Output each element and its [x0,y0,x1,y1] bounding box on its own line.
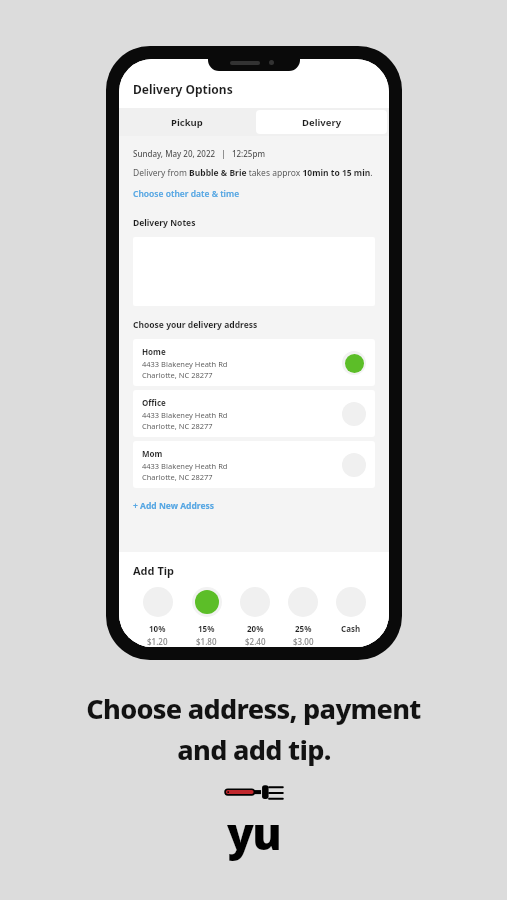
staticText: Mom [142,448,163,459]
staticText: 25% [295,623,312,634]
button[interactable]: Select Mom address [342,453,366,477]
staticText: $3.00 [293,636,314,647]
button[interactable]: + Add New Address [133,500,215,512]
button[interactable]: 25% [279,587,327,647]
button[interactable]: Cash [327,587,375,634]
button[interactable]: 10% [133,587,182,647]
staticText: Cash [341,623,361,634]
staticText: $1.80 [196,636,217,647]
button[interactable]: Home [133,339,375,386]
staticText: Pickup [171,116,203,129]
staticText: 4433 Blakeney Heath Rd [142,359,228,369]
staticText: + Add New Address [133,500,215,512]
button[interactable]: Delivery [256,110,387,134]
button[interactable]: Choose other date & time [133,188,240,200]
button[interactable]: 20% [231,587,279,647]
staticText: and add tip. [177,731,331,768]
staticText: Add Tip [133,563,174,578]
staticText: Delivery from Bubble & Brie takes approx… [133,167,373,179]
staticText: 4433 Blakeney Heath Rd [142,410,228,420]
staticText: Charlotte, NC 28277 [142,370,213,380]
staticText: 15% [198,623,215,634]
staticText: Delivery Options [133,81,233,97]
button[interactable]: Office [133,390,375,437]
staticText: yu [227,803,281,863]
button[interactable]: 15% [182,587,231,647]
staticText: Choose your delivery address [133,319,258,331]
staticText: Charlotte, NC 28277 [142,472,213,482]
button[interactable]: Mom [133,441,375,488]
staticText: 10% [149,623,166,634]
staticText: Sunday, May 20, 2022 | 12:25pm [133,148,265,159]
staticText: $1.20 [147,636,168,647]
staticText: Home [142,346,166,357]
staticText: Choose other date & time [133,188,240,200]
staticText: Choose address, payment [86,690,421,727]
staticText: Delivery [302,116,342,129]
staticText: 4433 Blakeney Heath Rd [142,461,228,471]
button[interactable]: Select Office address [342,402,366,426]
staticText: Charlotte, NC 28277 [142,421,213,431]
staticText: 20% [247,623,264,634]
button[interactable]: Select Home address [342,351,366,375]
staticText: $2.40 [245,636,266,647]
button[interactable]: Pickup [119,108,254,136]
staticText: Delivery Notes [133,217,196,229]
staticText: Office [142,397,166,408]
